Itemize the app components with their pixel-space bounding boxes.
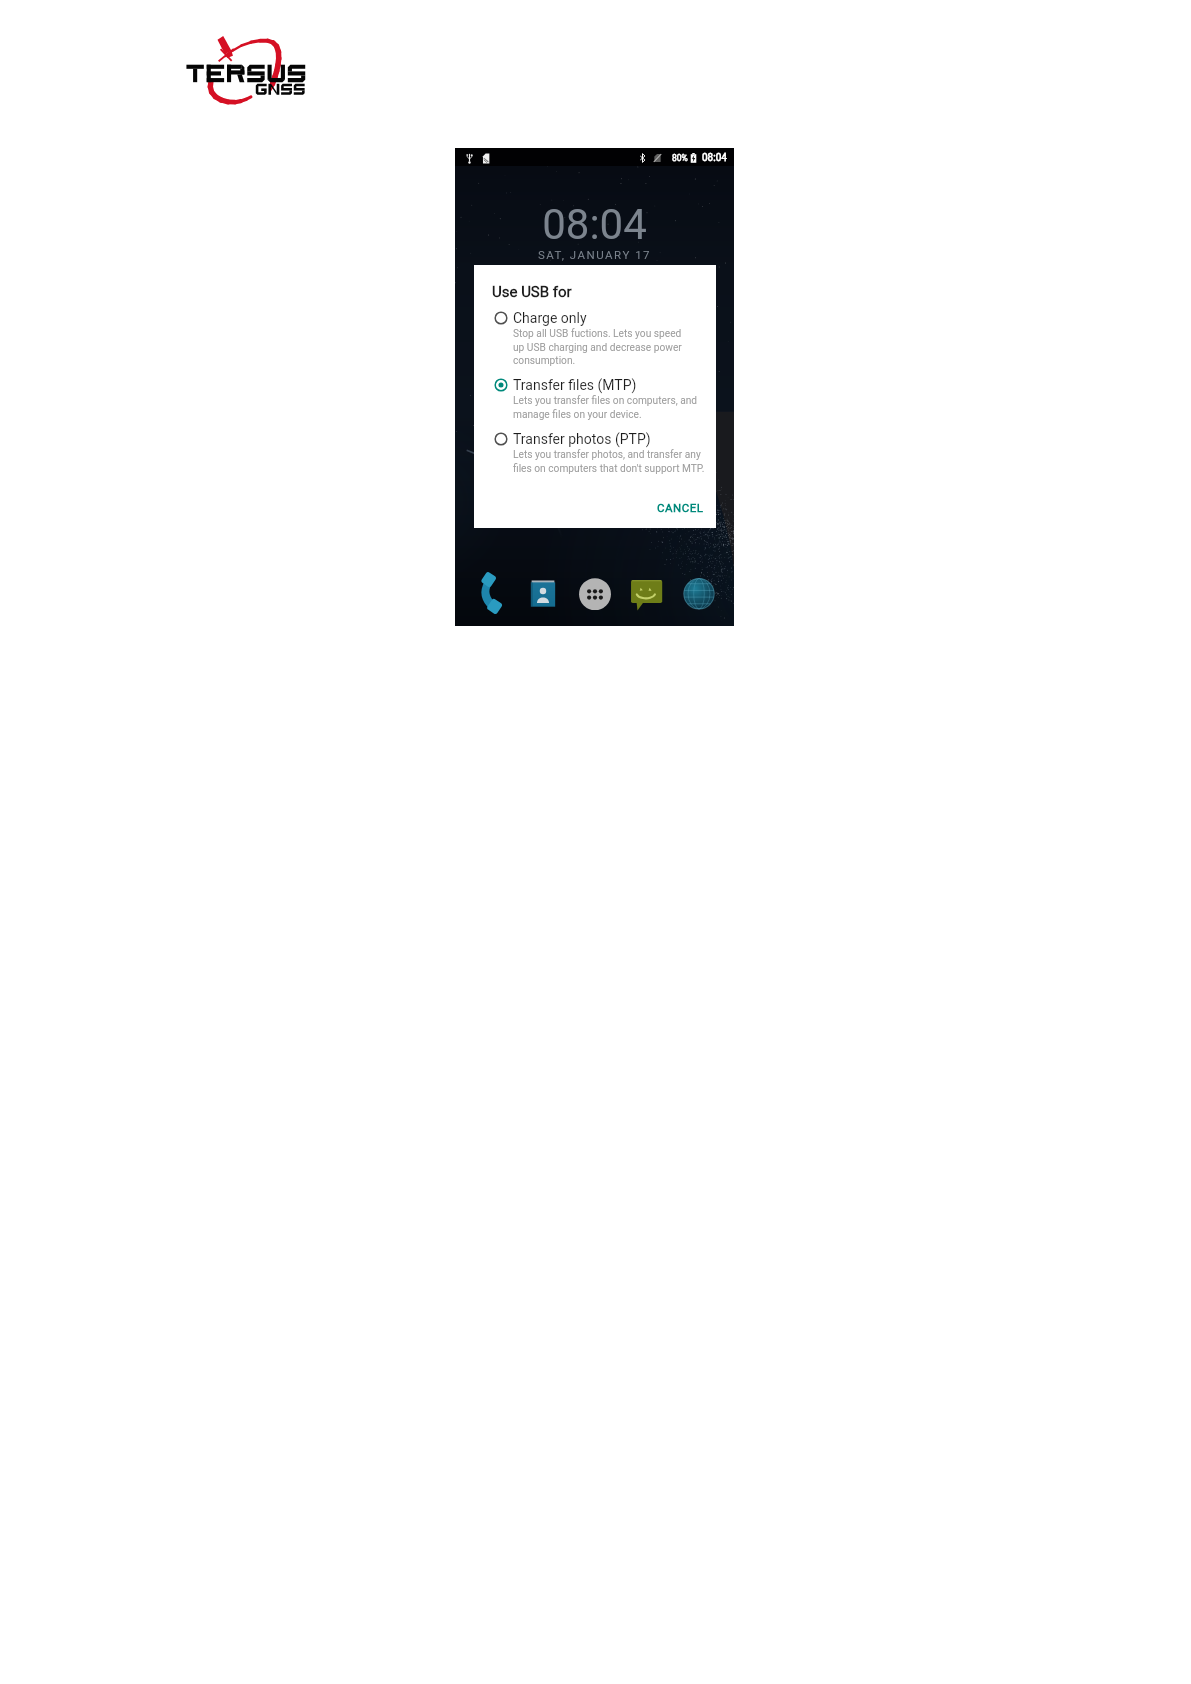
staticText: Use USB for: [492, 283, 572, 301]
staticText: 08:04: [455, 200, 734, 249]
staticText: 80%: [672, 153, 688, 163]
staticText: Transfer photos (PTP): [513, 431, 651, 447]
button[interactable]: Transfer photos (PTP): [474, 431, 716, 474]
button[interactable]: Charge only: [474, 310, 716, 366]
button[interactable]: Transfer files (MTP): [474, 377, 716, 420]
staticText: Charge only: [513, 310, 587, 326]
button[interactable]: Messaging: [628, 574, 666, 612]
staticText: CANCEL: [657, 501, 704, 514]
button[interactable]: Apps: [576, 574, 614, 612]
staticText: SAT, JANUARY 17: [455, 248, 734, 261]
staticText: Transfer files (MTP): [513, 377, 637, 393]
staticText: Stop all USB fuctions. Lets you speed up…: [513, 328, 682, 366]
staticText: Lets you transfer photos, and transfer a…: [513, 449, 705, 474]
button[interactable]: Phone: [473, 574, 511, 612]
staticText: 08:04: [702, 152, 727, 164]
staticText: Lets you transfer files on computers, an…: [513, 395, 698, 420]
button[interactable]: Contacts: [524, 574, 562, 612]
button[interactable]: Browser: [680, 574, 718, 612]
button[interactable]: CANCEL: [649, 495, 712, 520]
